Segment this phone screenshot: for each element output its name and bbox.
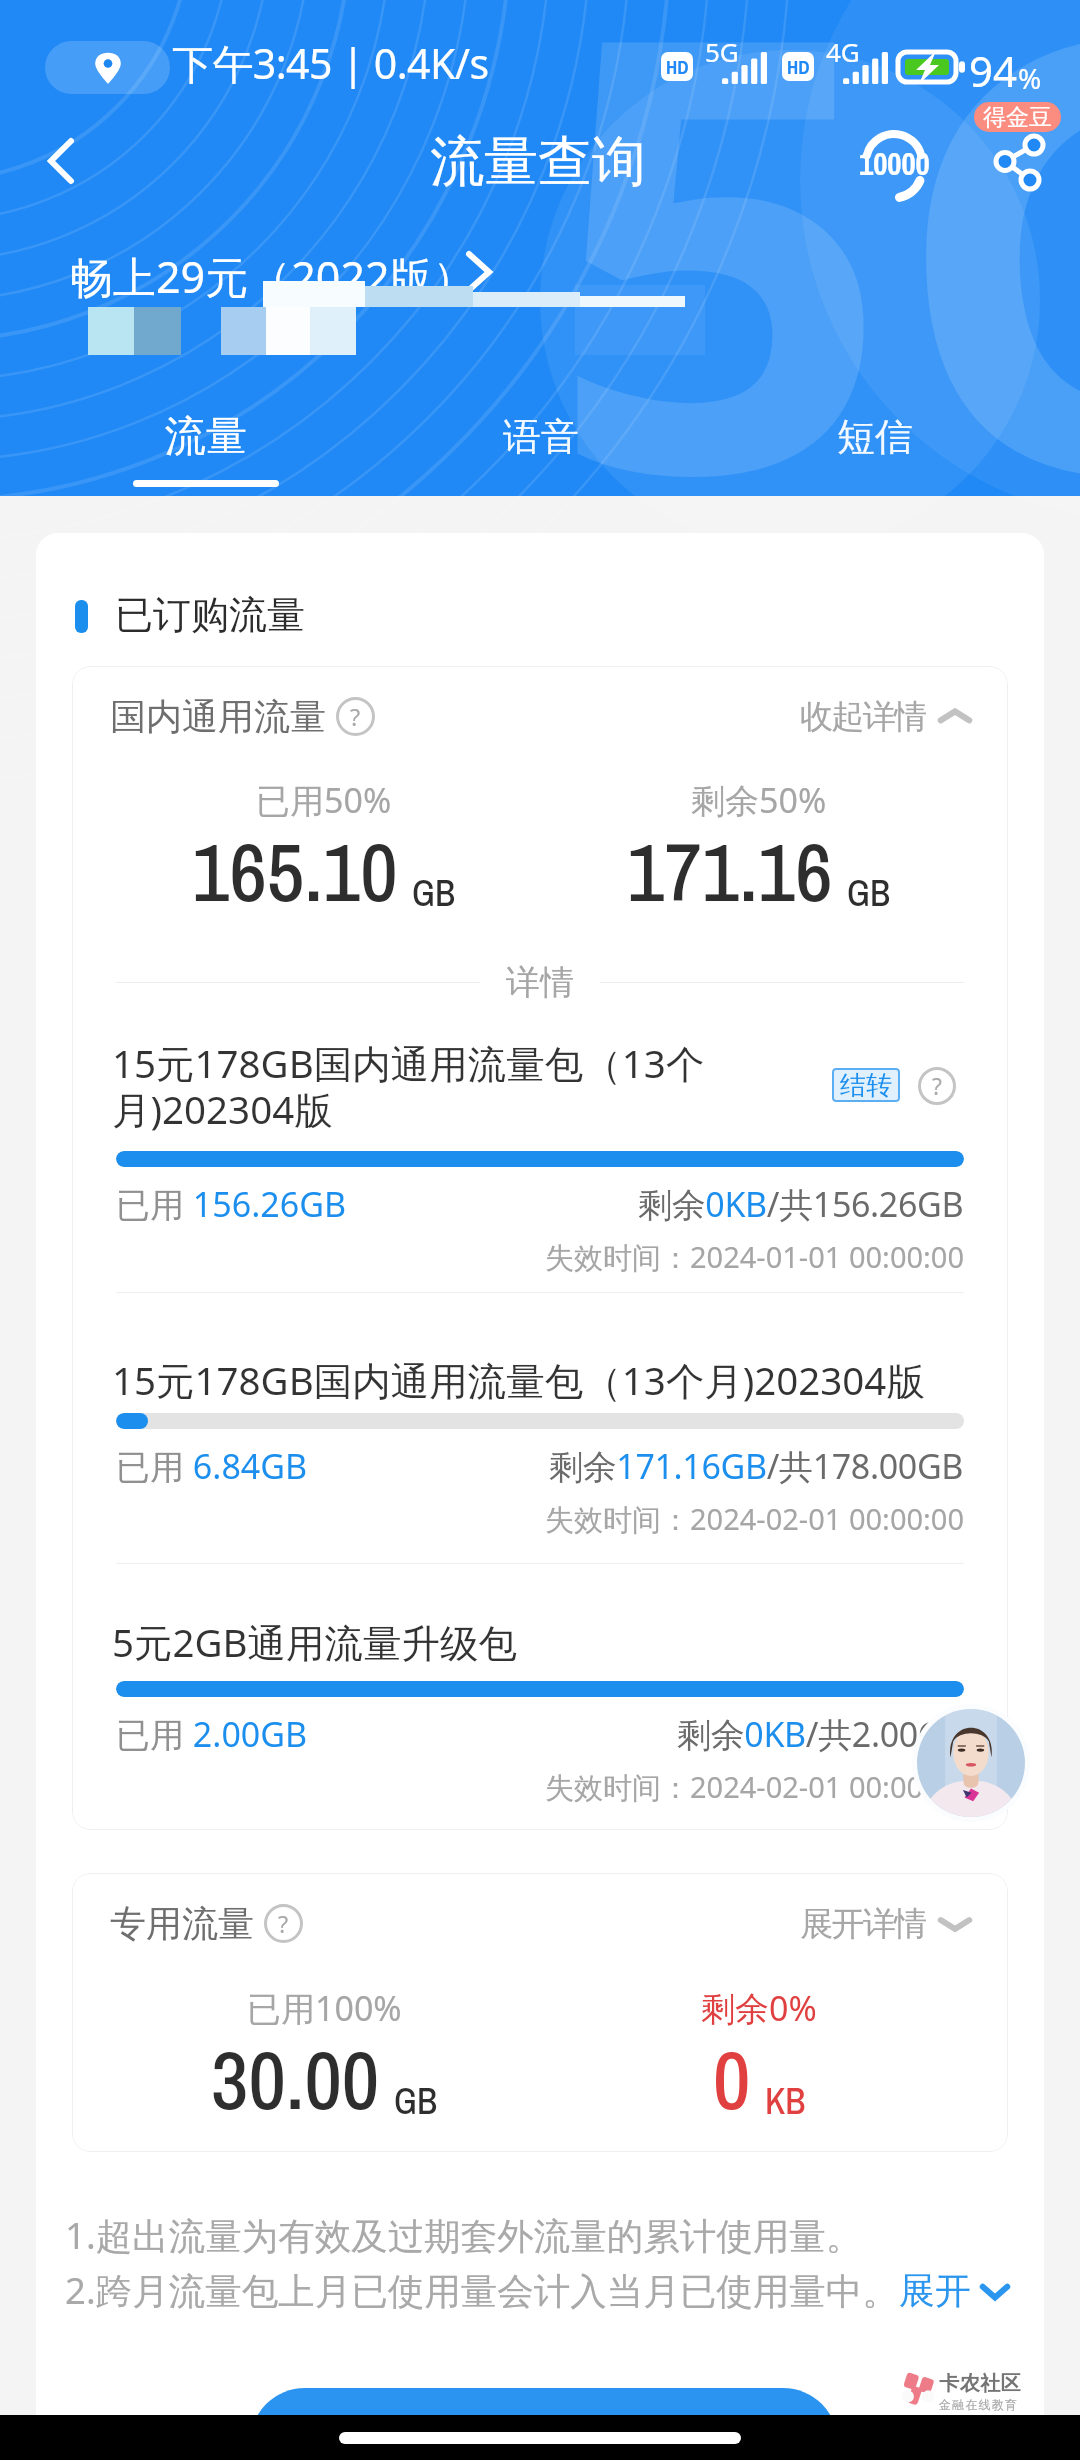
staticText: GB	[412, 869, 456, 917]
staticText: 结转	[840, 1069, 892, 1102]
staticText: 畅上29元（2022版）	[70, 247, 476, 306]
staticText: 已用 2.00GB	[116, 1711, 308, 1757]
staticText: 5G	[705, 34, 739, 69]
button[interactable]: Help	[264, 1904, 303, 1943]
staticText: 0	[713, 2024, 751, 2134]
staticText: 流量	[165, 411, 247, 463]
staticText: 94	[969, 42, 1018, 99]
staticText: 165.10	[192, 816, 398, 926]
staticText: ?	[278, 1908, 289, 1940]
staticText: 展开	[899, 2268, 971, 2313]
staticText: 剩余0KB/共156.26GB	[638, 1181, 964, 1227]
staticText: 171.16	[627, 816, 833, 926]
staticText: 语音	[503, 413, 579, 461]
button[interactable]: 收起详情	[762, 696, 972, 738]
staticText: 国内通用流量	[110, 694, 326, 739]
staticText: 展开详情	[800, 1903, 926, 1945]
button[interactable]: 畅上29元（2022版）	[62, 243, 512, 303]
button[interactable]: 展开详情	[762, 1903, 972, 1945]
staticText: 剩余171.16GB/共178.00GB	[549, 1443, 964, 1489]
staticText: 已用50%	[256, 777, 392, 823]
staticText: 失效时间：2024-01-01 00:00:00	[116, 1237, 964, 1277]
button[interactable]: 结转	[832, 1068, 900, 1102]
staticText: 2.跨月流量包上月已使用量会计入当月已使用量中。	[65, 2265, 899, 2315]
staticText: ?	[932, 1071, 942, 1102]
button[interactable]: Help	[336, 697, 375, 736]
staticText: 失效时间：2024-02-01 00:00:00	[116, 1767, 964, 1807]
staticText: 已用 6.84GB	[116, 1443, 308, 1489]
button[interactable]: Help	[918, 1067, 956, 1105]
staticText: 详情	[506, 961, 574, 1004]
staticText: 剩余0KB/共2.00GB	[677, 1711, 964, 1757]
button[interactable]: 流量	[96, 400, 316, 496]
staticText: 短信	[837, 413, 913, 461]
staticText: 1.超出流量为有效及过期套外流量的累计使用量。	[65, 2210, 863, 2260]
staticText: 下午3:45 | 0.4K/s	[172, 35, 489, 91]
staticText: HD	[787, 54, 810, 80]
staticText: 金融在线教育	[939, 2397, 1019, 2412]
staticText: 已用100%	[247, 1985, 402, 2031]
staticText: 15元178GB国内通用流量包（13个 月)202304版	[112, 1037, 802, 1135]
button[interactable]: Action	[250, 2388, 838, 2415]
button[interactable]: 得金豆	[974, 102, 1061, 132]
staticText: HD	[666, 54, 689, 80]
staticText: 已用 156.26GB	[116, 1181, 347, 1227]
staticText: GB	[847, 869, 891, 917]
staticText: 卡农社区	[939, 2371, 1021, 2396]
button[interactable]: 语音	[431, 400, 651, 496]
staticText: 30.00	[211, 2024, 380, 2134]
button[interactable]: Back	[19, 119, 103, 203]
staticText: 5元2GB通用流量升级包	[112, 1616, 964, 1669]
staticText: 失效时间：2024-02-01 00:00:00	[116, 1499, 964, 1539]
staticText: %	[1018, 59, 1042, 97]
staticText: 4G	[826, 34, 860, 69]
staticText: KB	[765, 2077, 806, 2125]
staticText: GB	[394, 2077, 438, 2125]
staticText: 剩余50%	[691, 777, 827, 823]
button[interactable]: Customer service 10000	[854, 123, 934, 203]
staticText: 10000	[859, 143, 930, 185]
staticText: 15元178GB国内通用流量包（13个月)202304版	[112, 1354, 964, 1407]
staticText: ?	[350, 701, 361, 733]
button[interactable]: 短信	[765, 400, 985, 496]
staticText: 流量查询	[430, 128, 646, 196]
button[interactable]: Customer service assistant	[912, 1704, 1030, 1822]
button[interactable]: Share	[978, 121, 1062, 205]
staticText: 已订购流量	[115, 591, 305, 639]
staticText: 剩余0%	[701, 1985, 817, 2031]
staticText: 专用流量	[110, 1901, 254, 1946]
staticText: 得金豆	[983, 103, 1052, 132]
button[interactable]: 展开	[899, 2268, 1013, 2313]
staticText: 收起详情	[800, 696, 926, 738]
